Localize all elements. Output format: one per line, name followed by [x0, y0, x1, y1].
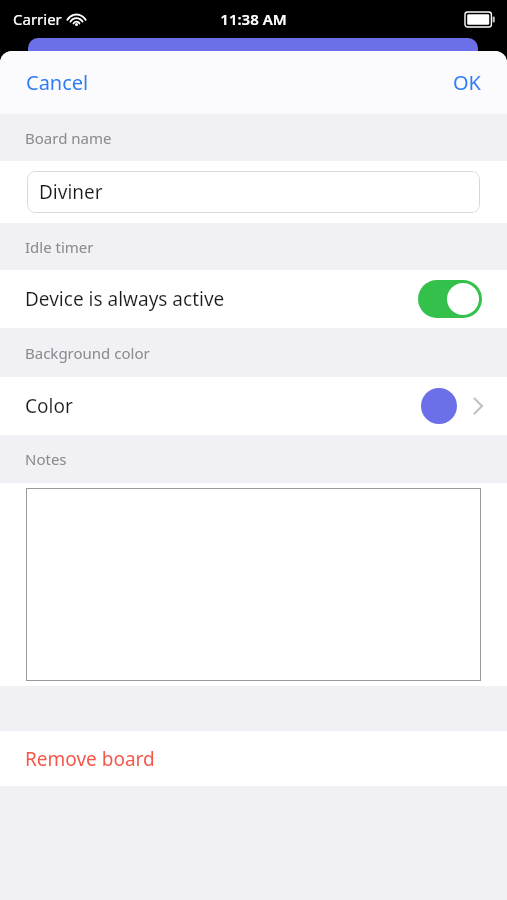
button[interactable]: OK: [427, 57, 507, 108]
staticText: Carrier: [13, 9, 62, 29]
button[interactable]: Cancel: [0, 57, 115, 108]
staticText: Background color: [25, 343, 150, 363]
staticText: 11:38 AM: [220, 9, 287, 29]
staticText: Diviner: [39, 179, 103, 205]
staticText: Remove board: [25, 746, 155, 772]
button[interactable]: [26, 488, 481, 681]
button[interactable]: Diviner: [27, 171, 480, 213]
button[interactable]: Device is always active toggle: [418, 280, 482, 318]
button[interactable]: Color: [0, 377, 507, 435]
staticText: Notes: [25, 449, 67, 469]
button[interactable]: Remove board: [0, 731, 507, 786]
staticText: Device is always active: [25, 286, 418, 312]
staticText: Idle timer: [25, 237, 94, 257]
staticText: Cancel: [26, 69, 89, 96]
staticText: Color: [25, 393, 421, 419]
button[interactable]: Device is always active: [0, 270, 507, 328]
staticText: OK: [453, 69, 481, 96]
other: Open color picker: [465, 393, 491, 419]
staticText: Board name: [25, 128, 112, 148]
